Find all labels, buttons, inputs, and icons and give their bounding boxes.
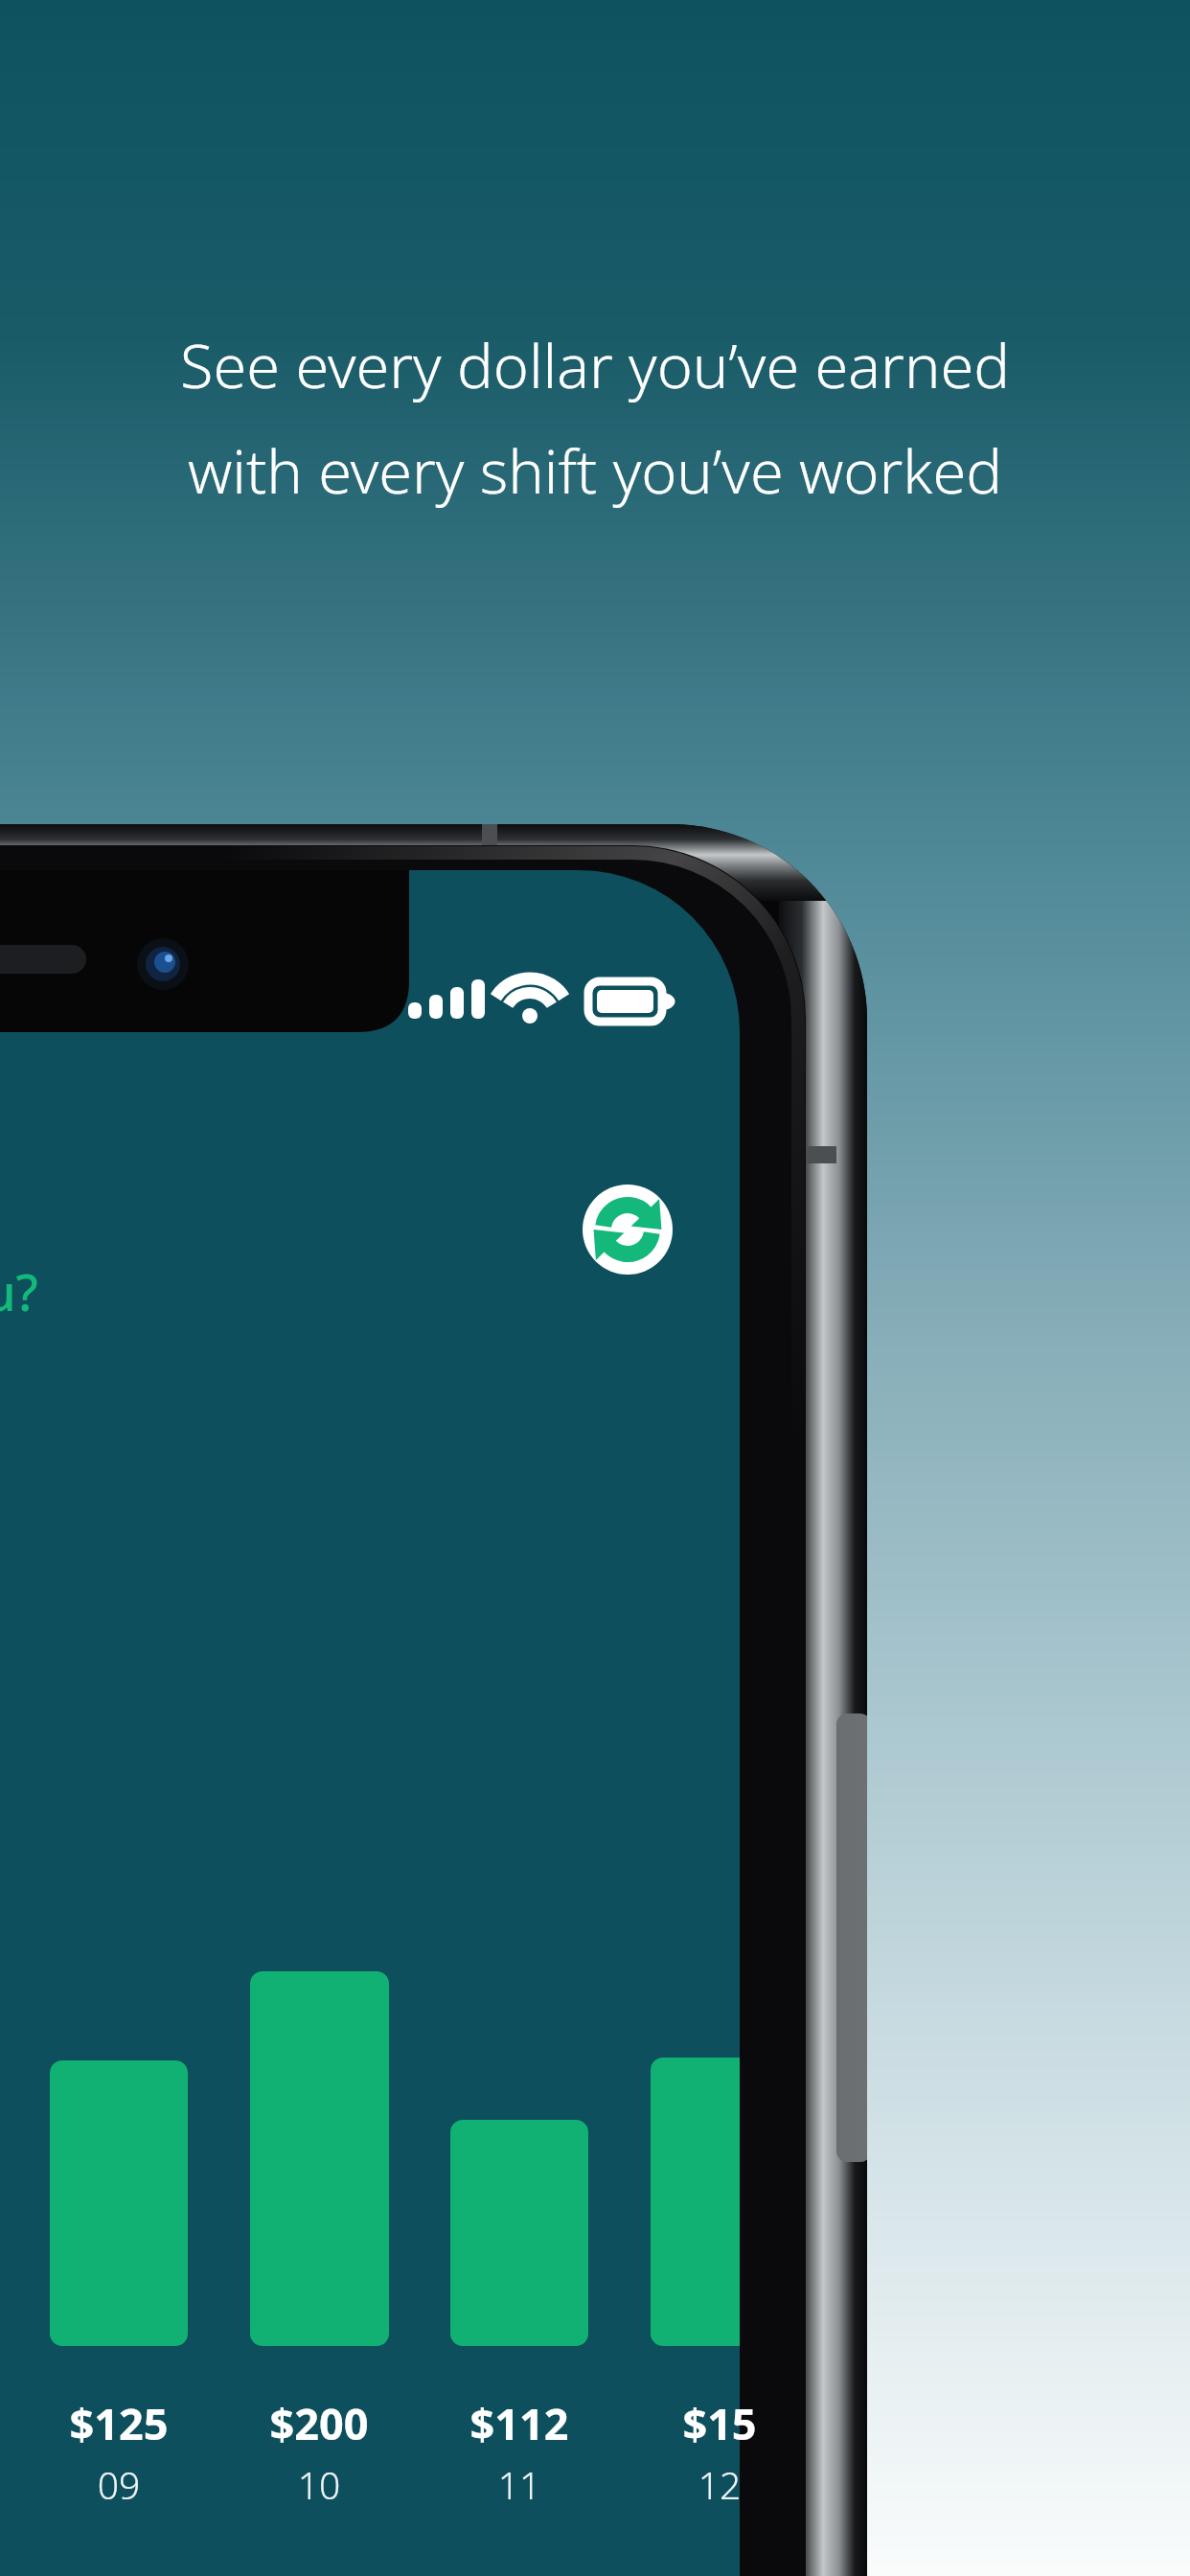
staticText: See every dollar you’ve earned with ever… (0, 324, 1190, 554)
button[interactable]: $200 (214, 2394, 424, 2453)
staticText: 11 (414, 2459, 625, 2513)
button[interactable]: $125 (13, 2394, 224, 2453)
button[interactable]: Sync (583, 1184, 673, 1275)
staticText: 10 (214, 2459, 424, 2513)
staticText: $200 (214, 2394, 424, 2453)
staticText: $112 (414, 2394, 625, 2453)
staticText: $125 (13, 2394, 224, 2453)
button[interactable]: $15 (614, 2394, 825, 2453)
staticText: $15 (614, 2394, 825, 2453)
staticText: 09 (13, 2459, 224, 2513)
button[interactable]: $112 (414, 2394, 625, 2453)
staticText: u? (0, 1257, 38, 1325)
staticText: 12 (614, 2459, 825, 2513)
